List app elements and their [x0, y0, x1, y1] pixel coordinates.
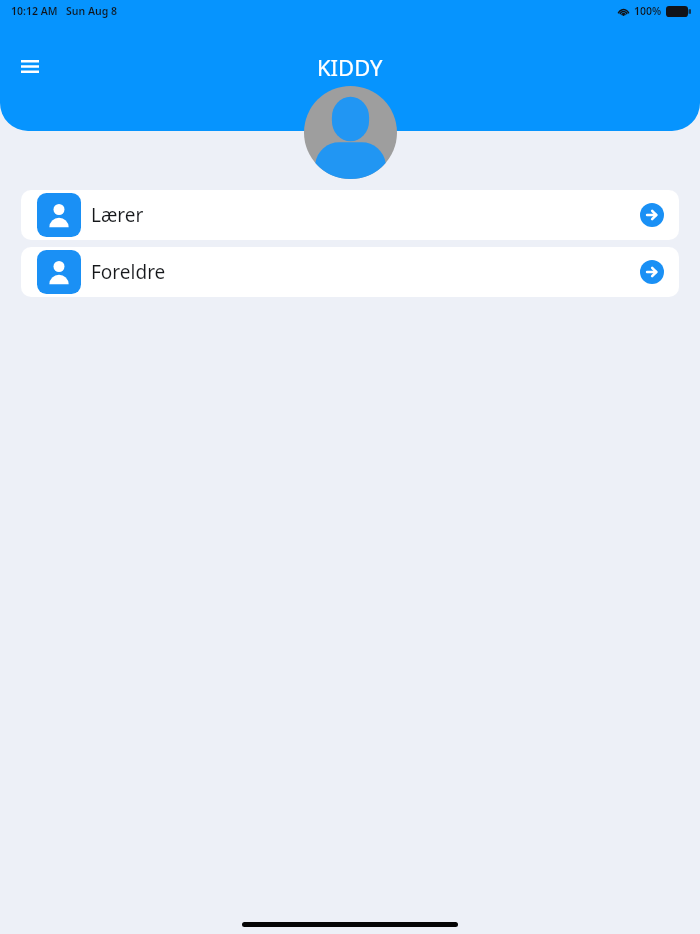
staticText: Foreldre: [91, 259, 166, 285]
button[interactable]: Continue: [640, 203, 664, 227]
button[interactable]: Foreldre: [21, 247, 679, 297]
staticText: Lærer: [91, 202, 144, 228]
staticText: KIDDY: [317, 52, 383, 82]
staticText: Sun Aug 8: [66, 4, 117, 18]
button[interactable]: Open navigation menu: [12, 48, 48, 84]
button[interactable]: Continue: [640, 260, 664, 284]
button[interactable]: Lærer: [21, 190, 679, 240]
staticText: 10:12 AM: [11, 4, 58, 18]
staticText: 100%: [634, 4, 662, 18]
